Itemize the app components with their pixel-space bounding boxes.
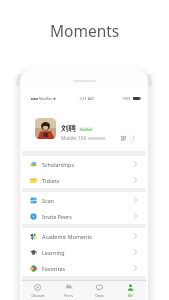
staticText: Peers: [64, 293, 73, 297]
button[interactable]: Learning: [22, 244, 146, 260]
staticText: 1:21 AM: [79, 96, 94, 101]
button[interactable]: Scan: [22, 192, 146, 208]
staticText: Learning: [42, 249, 65, 256]
button[interactable]: Scholarships: [22, 156, 146, 172]
staticText: Verified: [80, 127, 92, 131]
staticText: Invite Peers: [42, 213, 72, 220]
staticText: Scholarships: [42, 161, 74, 168]
staticText: Chats: [95, 293, 104, 297]
staticText: 刘聘: [61, 124, 76, 133]
button[interactable]: Academic Moments: [22, 228, 146, 244]
button[interactable]: Invite Peers: [22, 208, 146, 224]
staticText: Me: [128, 293, 133, 297]
other: QR code: [121, 136, 126, 141]
button[interactable]: Chats: [84, 281, 115, 300]
staticText: Tickets: [42, 177, 60, 184]
staticText: 100%: [122, 96, 131, 101]
button[interactable]: Me: [115, 281, 146, 300]
staticText: Moments: [50, 20, 120, 41]
button[interactable]: Tickets: [22, 172, 146, 188]
staticText: Favorites: [42, 265, 66, 272]
staticText: MaxWat: [39, 96, 52, 101]
button[interactable]: 刘聘: [22, 105, 146, 151]
staticText: Scan: [42, 197, 54, 204]
button[interactable]: Favorites: [22, 260, 146, 276]
staticText: Mobile: 159: [61, 135, 87, 141]
staticText: Academic Moments: [42, 233, 92, 240]
button[interactable]: Discover: [22, 281, 53, 300]
button[interactable]: Peers: [53, 281, 84, 300]
staticText: Discover: [31, 293, 45, 297]
